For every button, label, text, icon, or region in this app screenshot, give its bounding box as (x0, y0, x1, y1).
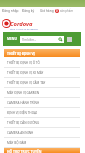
button[interactable]: Đăng nhập (2, 9, 19, 13)
button[interactable]: CAMERA AN NINH (4, 128, 80, 138)
button[interactable]: Đăng ký (22, 9, 35, 13)
button[interactable]: THIẾT BỊ ĐỊNH VỊ XE MÁY (4, 68, 80, 78)
staticText: MENU (7, 37, 17, 41)
staticText: CAMERA AN NINH (7, 131, 34, 135)
button[interactable]: THIẾT BỊ ĐỊNH VỊ (4, 49, 80, 57)
staticText: MÁY BỘ ĐÀM (7, 141, 27, 145)
staticText: THIẾT BỊ ĐỊNH VỊ Ô TÔ (7, 61, 40, 65)
button[interactable]: CAMERA HÀNH TRÌNH (4, 98, 80, 108)
staticText: THIẾT BỊ ĐỊNH VỊ CẦM TAY (7, 81, 46, 85)
staticText: Tìm kiếm... (22, 38, 37, 42)
staticText: CÔNG TY TNHH TM DV CORDOVA (10, 28, 39, 30)
staticText: CAMERA HÀNH TRÌNH (7, 101, 40, 105)
button[interactable]: Search (58, 37, 63, 42)
button[interactable]: Cordova home (2, 19, 11, 28)
button[interactable]: ĐỊNH VỊ ĐIỆN THOẠI (4, 108, 80, 118)
staticText: Cordova (10, 20, 33, 28)
button[interactable]: MÁY BỘ ĐÀM (4, 138, 80, 148)
staticText: Giỏ hàng (40, 9, 54, 13)
button[interactable]: THIẾT BỊ ĐỊNH VỊ CẦM TAY (4, 78, 80, 88)
button[interactable]: MENU (3, 32, 20, 46)
staticText: sản phẩm (60, 9, 73, 13)
button[interactable]: MÁY ĐỊNH VỊ GARMIN (4, 88, 80, 98)
button[interactable]: THIẾT BỊ ĐỊNH VỊ Ô TÔ (4, 58, 80, 68)
staticText: THIẾT BỊ ĐỊNH VỊ (7, 51, 35, 55)
staticText: THIẾT BỊ DẪN ĐƯỜNG (7, 121, 40, 125)
button[interactable]: HỖ TRỢ TRỰC TUYẾN (4, 148, 80, 153)
button[interactable]: Giỏ hàng (40, 9, 73, 13)
button[interactable]: THIẾT BỊ DẪN ĐƯỜNG (4, 118, 80, 128)
staticText: HỖ TRỢ TRỰC TUYẾN (7, 149, 42, 153)
staticText: THIẾT BỊ ĐỊNH VỊ XE MÁY (7, 71, 44, 75)
staticText: MÁY ĐỊNH VỊ GARMIN (7, 91, 39, 95)
staticText: ĐỊNH VỊ ĐIỆN THOẠI (7, 111, 38, 115)
staticText: 0 (56, 9, 58, 13)
